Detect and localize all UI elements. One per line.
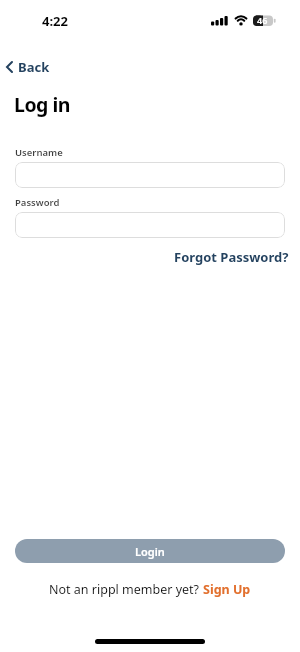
- staticText: Not an rippl member yet?: [49, 581, 203, 598]
- button[interactable]: [15, 212, 285, 238]
- button[interactable]: [15, 162, 285, 188]
- staticText: Sign Up: [203, 581, 251, 598]
- button[interactable]: Sign Up: [203, 581, 251, 598]
- staticText: Back: [18, 58, 50, 76]
- staticText: 46: [257, 14, 268, 26]
- staticText: Username: [15, 146, 63, 159]
- staticText: Log in: [14, 91, 70, 118]
- button[interactable]: Login: [15, 539, 285, 563]
- button[interactable]: Forgot Password?: [174, 248, 289, 266]
- staticText: Forgot Password?: [174, 248, 289, 266]
- staticText: Login: [135, 544, 165, 559]
- staticText: Password: [15, 196, 60, 209]
- staticText: 4:22: [42, 12, 68, 30]
- button[interactable]: Back: [5, 58, 50, 76]
